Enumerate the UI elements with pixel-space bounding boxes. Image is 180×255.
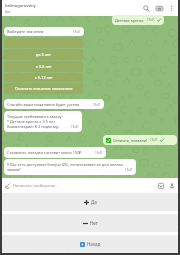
button[interactable]: Назад xyxy=(2,235,178,253)
staticText: У Вас есть доступные бонусы (26), исполь… xyxy=(7,162,124,167)
staticText: 15:41 xyxy=(71,125,79,129)
staticText: holmogorovskiy xyxy=(5,3,36,8)
button[interactable]: с 3-5 лет xyxy=(4,61,83,72)
staticText: Текущие требования к заказу: xyxy=(7,114,63,119)
staticText: 15:41 xyxy=(150,138,158,142)
staticText: заказа? xyxy=(7,167,125,172)
staticText: 15:41 xyxy=(93,103,101,107)
staticText: Назад xyxy=(87,241,101,247)
staticText: Да xyxy=(91,199,97,205)
staticText: с 3-5 лет xyxy=(36,64,52,69)
button[interactable]: Voice message xyxy=(166,180,177,191)
staticText: Детское кресло xyxy=(115,18,144,23)
button[interactable]: More options xyxy=(166,3,177,14)
staticText: Очистить значение показателя xyxy=(15,86,73,91)
staticText: Стоимость поездки составит около 150₽ xyxy=(7,150,95,155)
button[interactable]: Спасибо ваше пожелание будет учтено xyxy=(4,99,104,109)
staticText: Нет xyxy=(90,220,98,226)
staticText: Отлично, поехали! xyxy=(113,138,148,143)
staticText: 15:41 xyxy=(125,168,133,172)
staticText: 15:41 xyxy=(95,151,103,155)
button[interactable]: Детское кресло xyxy=(112,15,164,25)
button[interactable]: Текущие требования к заказу: xyxy=(4,111,82,132)
button[interactable]: Да xyxy=(2,193,178,211)
staticText: 15:41 xyxy=(147,18,155,22)
button[interactable]: Attach file xyxy=(2,180,13,191)
button[interactable]: У Вас есть доступные бонусы (26), исполь… xyxy=(4,159,136,175)
button[interactable]: Нет xyxy=(2,214,178,232)
button[interactable]: Стоимость поездки составит около 150₽ xyxy=(4,147,106,158)
button[interactable]: до 3 лет xyxy=(4,49,83,60)
button[interactable]: с 5-12 лет xyxy=(4,73,83,82)
staticText: * Детское кресло с 3-5 лет xyxy=(7,119,55,124)
button[interactable]: Search xyxy=(140,2,153,15)
staticText: Комментарий: К 3 подъезду. xyxy=(7,124,71,129)
staticText: Выберите значение xyxy=(7,29,73,34)
button[interactable]: Stickers xyxy=(155,180,166,191)
staticText: с 5-12 лет xyxy=(35,75,53,80)
staticText: Спасибо ваше пожелание будет учтено xyxy=(7,102,93,107)
button[interactable]: Video chat xyxy=(153,2,166,15)
staticText: Написать сообщение... xyxy=(13,183,155,189)
button[interactable]: Очистить значение показателя xyxy=(4,83,83,94)
staticText: бот xyxy=(5,9,11,14)
button[interactable]: Выберите значение xyxy=(4,27,84,36)
staticText: до 3 лет xyxy=(36,52,51,57)
staticText: 15:41 xyxy=(73,30,81,34)
button[interactable]: Отлично, поехали! xyxy=(103,135,177,145)
